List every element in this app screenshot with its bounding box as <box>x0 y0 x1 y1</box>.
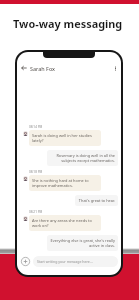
staticText: Rosemary is doing well in all the subjec… <box>50 153 115 163</box>
staticText: Two-way messaging <box>13 16 123 31</box>
staticText: That's great to hear. <box>78 198 115 203</box>
staticText: Everything else is great, she's really a… <box>50 238 115 248</box>
staticText: Start writing your message here... <box>37 259 93 264</box>
button[interactable]: Start writing your message here... <box>33 256 118 267</box>
staticText: Sarah Fox <box>30 65 56 72</box>
staticText: Sarah is doing well in her studies latel… <box>32 133 98 143</box>
staticText: 08:14 PM <box>29 125 43 129</box>
staticText: Are there any areas she needs to work on… <box>32 218 98 228</box>
staticText: She is nothing hard at home to improve m… <box>32 178 98 188</box>
staticText: 08:18 PM <box>29 170 43 174</box>
button[interactable]: Add attachment <box>20 256 31 267</box>
button[interactable]: Sarah Fox <box>17 61 121 75</box>
button[interactable]: More options <box>110 63 120 73</box>
staticText: 08:21 PM <box>29 210 43 214</box>
